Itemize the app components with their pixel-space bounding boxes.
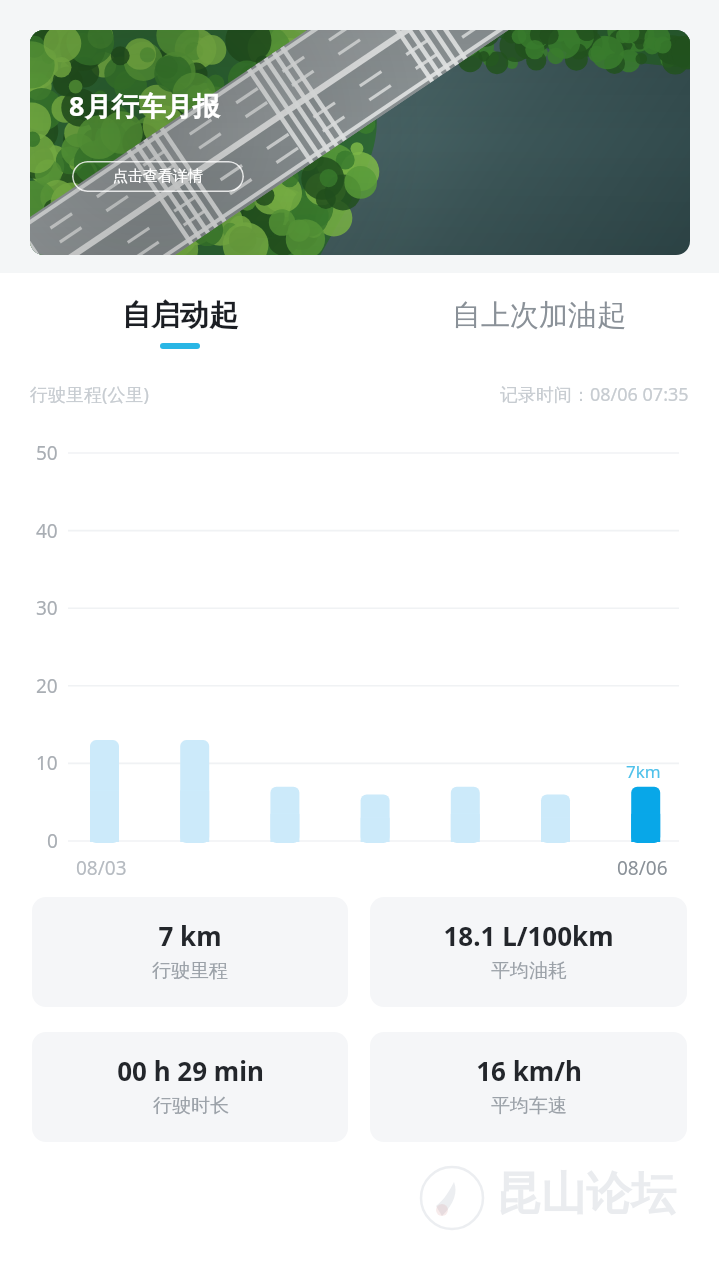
staticText: 08/06 <box>617 855 668 881</box>
staticText: 平均油耗 <box>491 959 567 983</box>
staticText: 行驶时长 <box>153 1094 229 1118</box>
button[interactable]: 自上次加油起 <box>359 273 719 373</box>
staticText: 00 h 29 min <box>117 1053 264 1088</box>
staticText: 7km <box>626 760 661 783</box>
staticText: 8月行车月报 <box>69 87 220 124</box>
staticText: 自上次加油起 <box>452 297 626 334</box>
staticText: 平均车速 <box>491 1094 567 1118</box>
button[interactable]: 自启动起 <box>0 273 359 373</box>
button[interactable]: 8月行车月报 <box>30 30 690 255</box>
staticText: 40 <box>36 518 58 544</box>
staticText: 昆山论坛 <box>496 1166 676 1223</box>
staticText: 18.1 L/100km <box>443 918 614 953</box>
button[interactable]: 00 h 29 min <box>32 1032 348 1142</box>
staticText: 7 km <box>158 918 222 953</box>
staticText: 10 <box>36 750 58 776</box>
staticText: 自启动起 <box>122 297 238 334</box>
staticText: 08/03 <box>76 855 127 881</box>
staticText: 记录时间：08/06 07:35 <box>500 382 689 407</box>
staticText: 行驶里程 <box>152 959 228 983</box>
staticText: 点击查看详情 <box>113 167 203 186</box>
button[interactable]: 7 km <box>32 897 348 1007</box>
button[interactable]: 16 km/h <box>370 1032 687 1142</box>
staticText: 16 km/h <box>476 1053 582 1088</box>
staticText: 20 <box>36 673 58 699</box>
staticText: 30 <box>36 595 58 621</box>
staticText: 50 <box>36 440 58 466</box>
staticText: 0 <box>47 828 58 854</box>
button[interactable]: 18.1 L/100km <box>370 897 687 1007</box>
staticText: 行驶里程(公里) <box>30 382 149 407</box>
button[interactable]: 点击查看详情 <box>72 161 244 192</box>
